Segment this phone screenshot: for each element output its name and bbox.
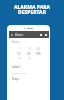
- staticText: 29: [28, 47, 31, 51]
- staticText: Days: [12, 77, 19, 81]
- staticText: 12: [17, 52, 21, 56]
- staticText: Label: [12, 65, 20, 69]
- staticText: 30: [27, 52, 31, 56]
- staticText: ALARMA PARA DESPERTAR: [0, 4, 64, 15]
- staticText: 11: [18, 47, 21, 51]
- staticText: 31: [28, 57, 31, 61]
- staticText: Hora: [12, 40, 19, 44]
- staticText: Alarm name: [12, 71, 27, 74]
- staticText: 01: [18, 57, 21, 61]
- staticText: Alarm: [15, 33, 24, 37]
- button[interactable]: Back: [9, 31, 49, 38]
- staticText: PM: [36, 52, 41, 56]
- staticText: AM: [36, 47, 41, 51]
